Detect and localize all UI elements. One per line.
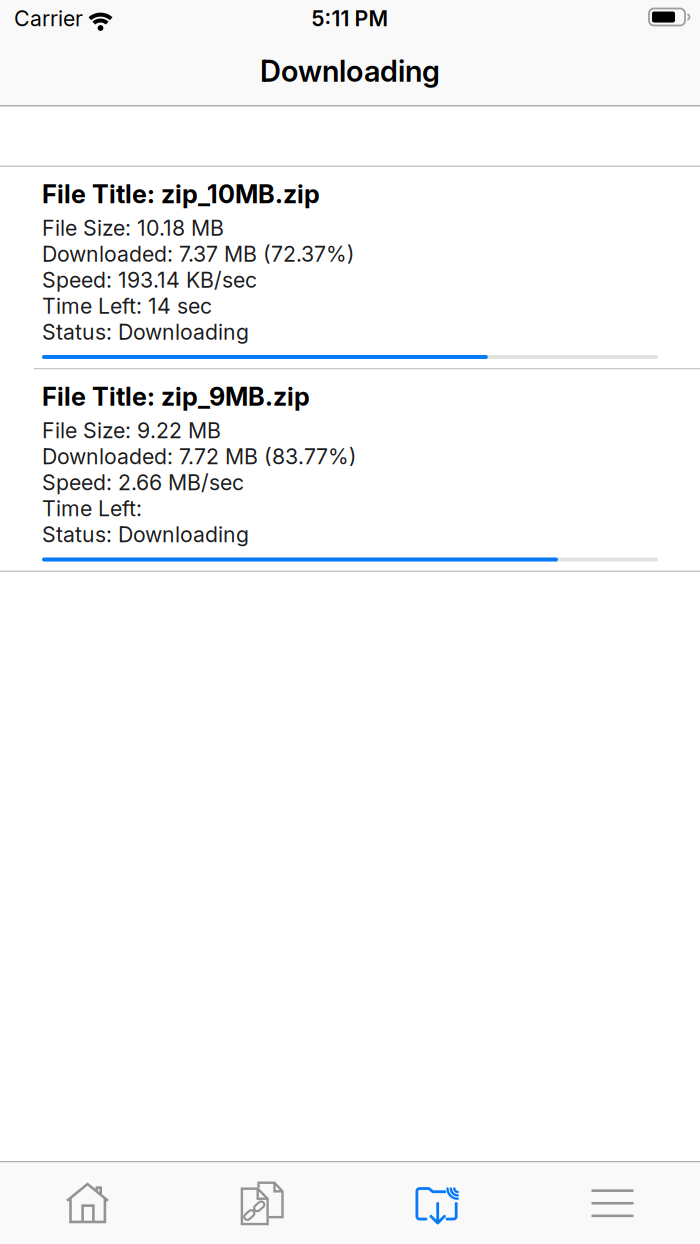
staticText: Time Left: 14 sec (42, 293, 212, 319)
button[interactable]: Home (0, 1162, 175, 1244)
button[interactable]: File Title: zip_10MB.zip (0, 167, 700, 368)
button[interactable]: Link Files (175, 1162, 350, 1244)
staticText: Speed: 193.14 KB/sec (42, 267, 257, 293)
staticText: Status: Downloading (42, 319, 249, 345)
button[interactable]: More (525, 1162, 700, 1244)
staticText: File Title: zip_10MB.zip (42, 179, 320, 209)
staticText: Downloading (260, 54, 440, 88)
staticText: Status: Downloading (42, 522, 249, 547)
staticText: File Title: zip_9MB.zip (42, 382, 310, 411)
button[interactable]: File Title: zip_9MB.zip (0, 369, 700, 570)
staticText: Speed: 2.66 MB/sec (42, 470, 244, 495)
staticText: Downloaded: 7.37 MB (72.37%) (42, 241, 355, 267)
staticText: Downloaded: 7.72 MB (83.77%) (42, 444, 357, 469)
staticText: File Size: 9.22 MB (42, 418, 221, 443)
staticText: 5:11 PM (311, 6, 388, 31)
staticText: Time Left: (42, 496, 148, 521)
button[interactable]: Downloading (350, 1162, 525, 1244)
staticText: Carrier (14, 6, 83, 31)
staticText: File Size: 10.18 MB (42, 215, 224, 241)
